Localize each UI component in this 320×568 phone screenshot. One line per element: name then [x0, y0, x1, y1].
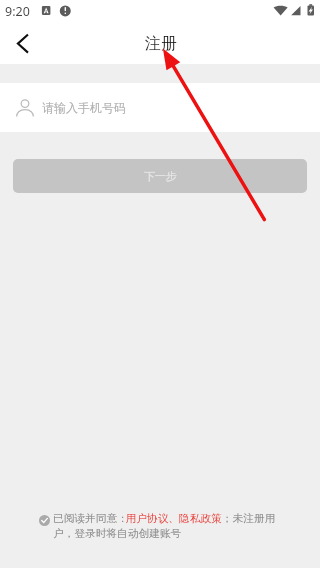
button[interactable]: 请输入手机号码 — [0, 83, 320, 132]
staticText: 下一步 — [144, 169, 177, 183]
button[interactable]: Back — [0, 22, 44, 64]
button[interactable]: Agree to terms checkbox — [39, 515, 50, 526]
staticText: 请输入手机号码 — [42, 100, 126, 115]
staticText: 9:20 — [5, 3, 30, 20]
staticText: 注册 — [145, 34, 177, 54]
staticText: 已阅读并同意：用户协议、隐私政策；未注册用户，登录时将自动创建账号 — [53, 512, 283, 540]
button[interactable]: 下一步 — [13, 159, 307, 193]
